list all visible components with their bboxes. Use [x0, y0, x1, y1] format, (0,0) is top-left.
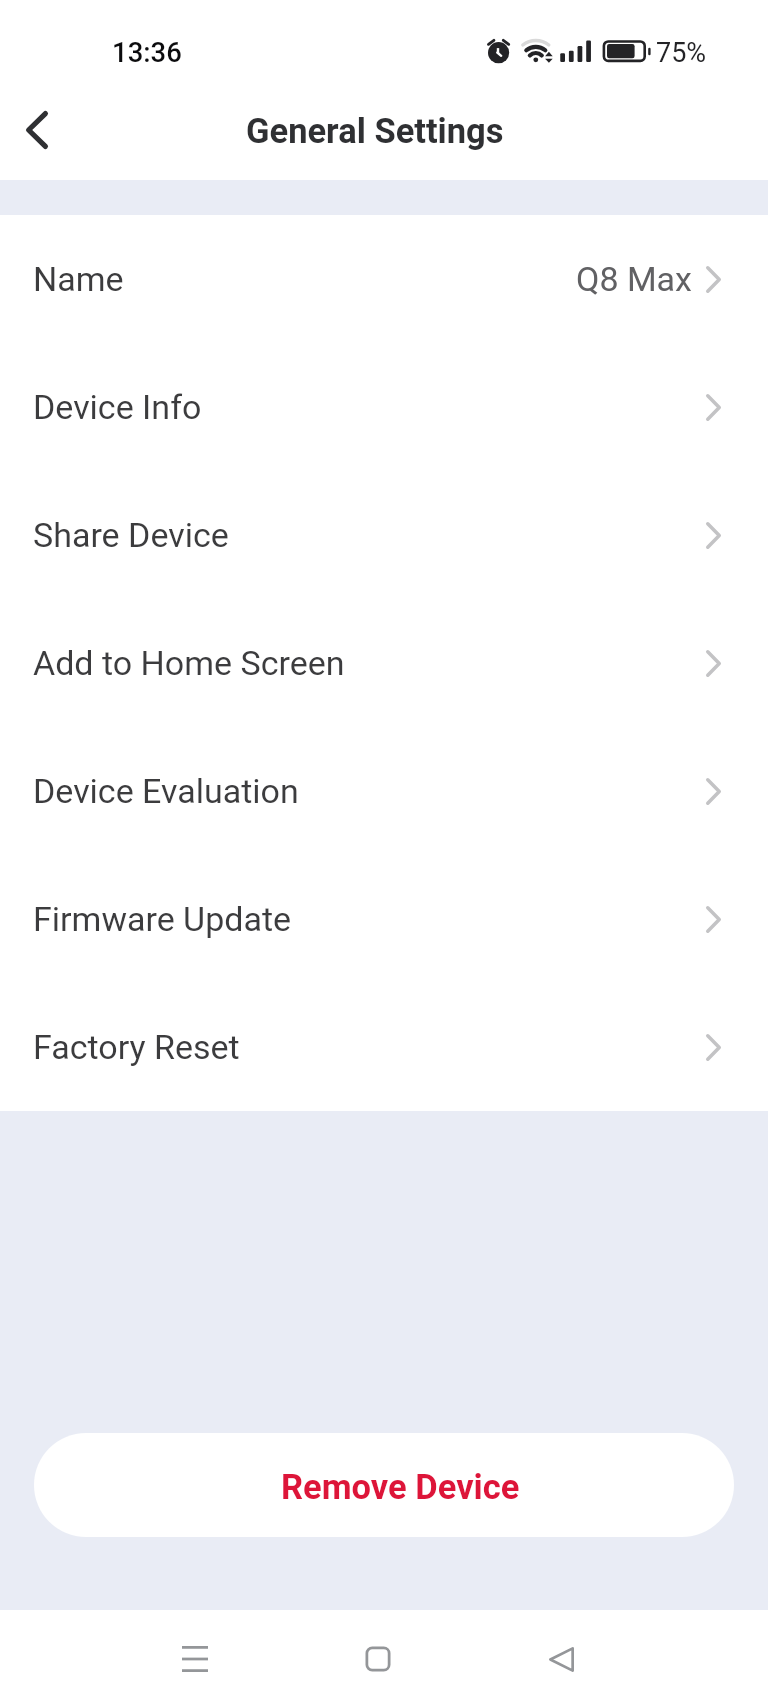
staticText: 13:36 [112, 36, 182, 68]
staticText: Device Info [33, 387, 202, 427]
staticText: Factory Reset [33, 1027, 240, 1067]
button[interactable]: Device Info [0, 343, 768, 471]
button[interactable]: Remove Device [34, 1433, 734, 1537]
staticText: Name [33, 259, 124, 299]
button[interactable]: Firmware Update [0, 855, 768, 983]
button[interactable]: Add to Home Screen [0, 599, 768, 727]
button[interactable]: Device Evaluation [0, 727, 768, 855]
button[interactable]: Factory Reset [0, 983, 768, 1111]
staticText: General Settings [246, 111, 504, 151]
staticText: 75% [656, 37, 707, 69]
staticText: Add to Home Screen [33, 643, 345, 683]
staticText: Firmware Update [33, 899, 292, 939]
staticText: Device Evaluation [33, 771, 299, 811]
staticText: Share Device [33, 515, 229, 555]
button[interactable]: Home [330, 1611, 426, 1706]
button[interactable]: Back [513, 1611, 609, 1706]
button[interactable]: Recent apps [147, 1611, 243, 1706]
button[interactable]: Name [0, 215, 768, 343]
staticText: Remove Device [281, 1467, 520, 1507]
button[interactable]: Share Device [0, 471, 768, 599]
staticText: Q8 Max [576, 259, 692, 299]
button[interactable]: Back [0, 90, 72, 180]
